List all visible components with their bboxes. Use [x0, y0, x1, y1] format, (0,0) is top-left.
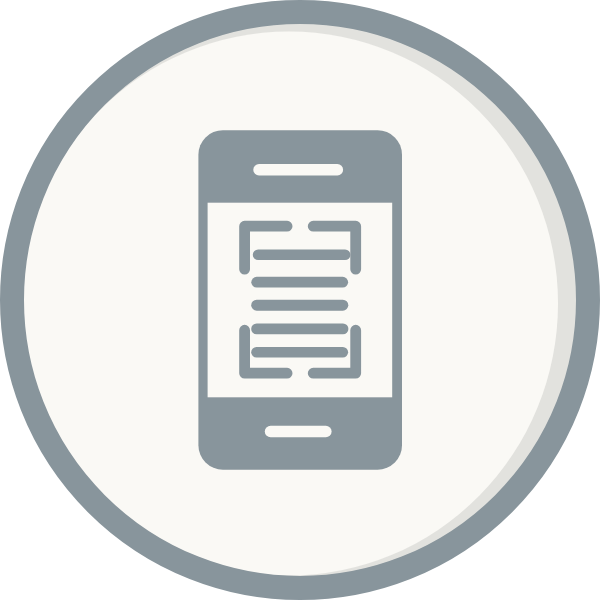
button[interactable]: Scan document with phone: [0, 0, 600, 600]
